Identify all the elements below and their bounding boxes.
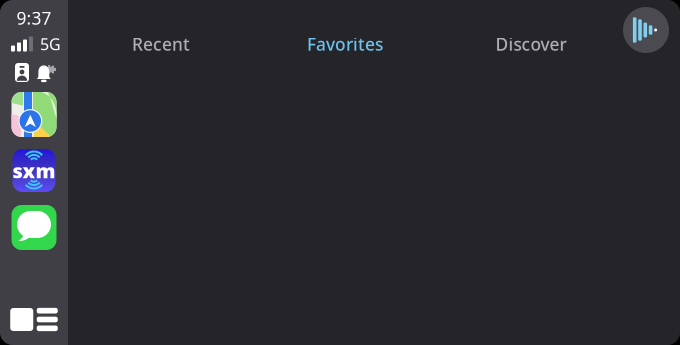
button[interactable]: Recent: [101, 17, 221, 71]
staticText: 9:37: [16, 6, 51, 29]
button[interactable]: SiriusXM: [12, 149, 55, 192]
button[interactable]: Dashboard: [10, 308, 58, 331]
staticText: Favorites: [307, 32, 383, 55]
staticText: Discover: [495, 32, 566, 55]
staticText: sxm: [12, 157, 55, 184]
button[interactable]: Favorites: [285, 17, 405, 71]
staticText: Recent: [132, 32, 190, 55]
button[interactable]: SiriusXM: [623, 7, 669, 53]
button[interactable]: Maps: [11, 92, 56, 137]
staticText: 5G: [40, 33, 61, 55]
button[interactable]: Messages: [11, 205, 56, 250]
button[interactable]: Discover: [471, 17, 591, 71]
